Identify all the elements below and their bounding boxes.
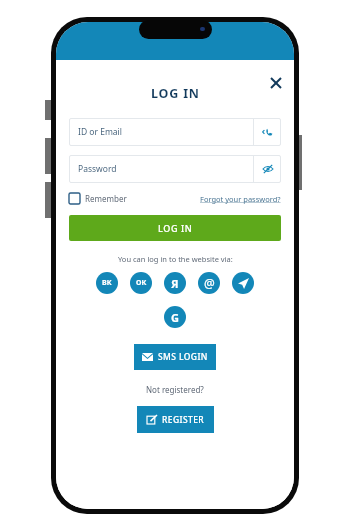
button[interactable]: Close xyxy=(267,74,285,92)
button[interactable]: Mail xyxy=(198,272,220,294)
staticText: ОК xyxy=(136,278,147,288)
staticText: Password xyxy=(78,163,117,175)
staticText: G xyxy=(171,310,179,325)
staticText: REGISTER xyxy=(162,414,205,426)
button[interactable]: Telegram xyxy=(232,272,254,294)
button[interactable]: Yandex xyxy=(164,272,186,294)
staticText: Forgot your password? xyxy=(200,194,281,204)
staticText: ВК xyxy=(102,278,112,288)
button[interactable]: ID or Email xyxy=(69,118,281,146)
staticText: You can log in to the website via: xyxy=(118,254,233,264)
button[interactable]: Odnoklassniki xyxy=(130,272,152,294)
button[interactable]: VK xyxy=(96,272,118,294)
staticText: Not registered? xyxy=(146,384,204,395)
staticText: SMS LOGIN xyxy=(158,351,208,363)
button[interactable]: LOG IN xyxy=(69,215,281,241)
button[interactable]: Password xyxy=(69,155,281,183)
staticText: Remember xyxy=(85,193,127,204)
button[interactable]: Google xyxy=(164,306,186,328)
button[interactable]: Forgot your password? xyxy=(200,194,281,204)
button[interactable]: Remember xyxy=(69,193,127,204)
staticText: Я xyxy=(171,276,179,291)
button[interactable]: REGISTER xyxy=(137,406,214,433)
button[interactable]: SMS LOGIN xyxy=(134,344,216,370)
staticText: ID or Email xyxy=(78,126,122,138)
staticText: LOG IN xyxy=(158,222,193,234)
staticText: @ xyxy=(204,275,215,291)
staticText: LOG IN xyxy=(151,85,200,102)
